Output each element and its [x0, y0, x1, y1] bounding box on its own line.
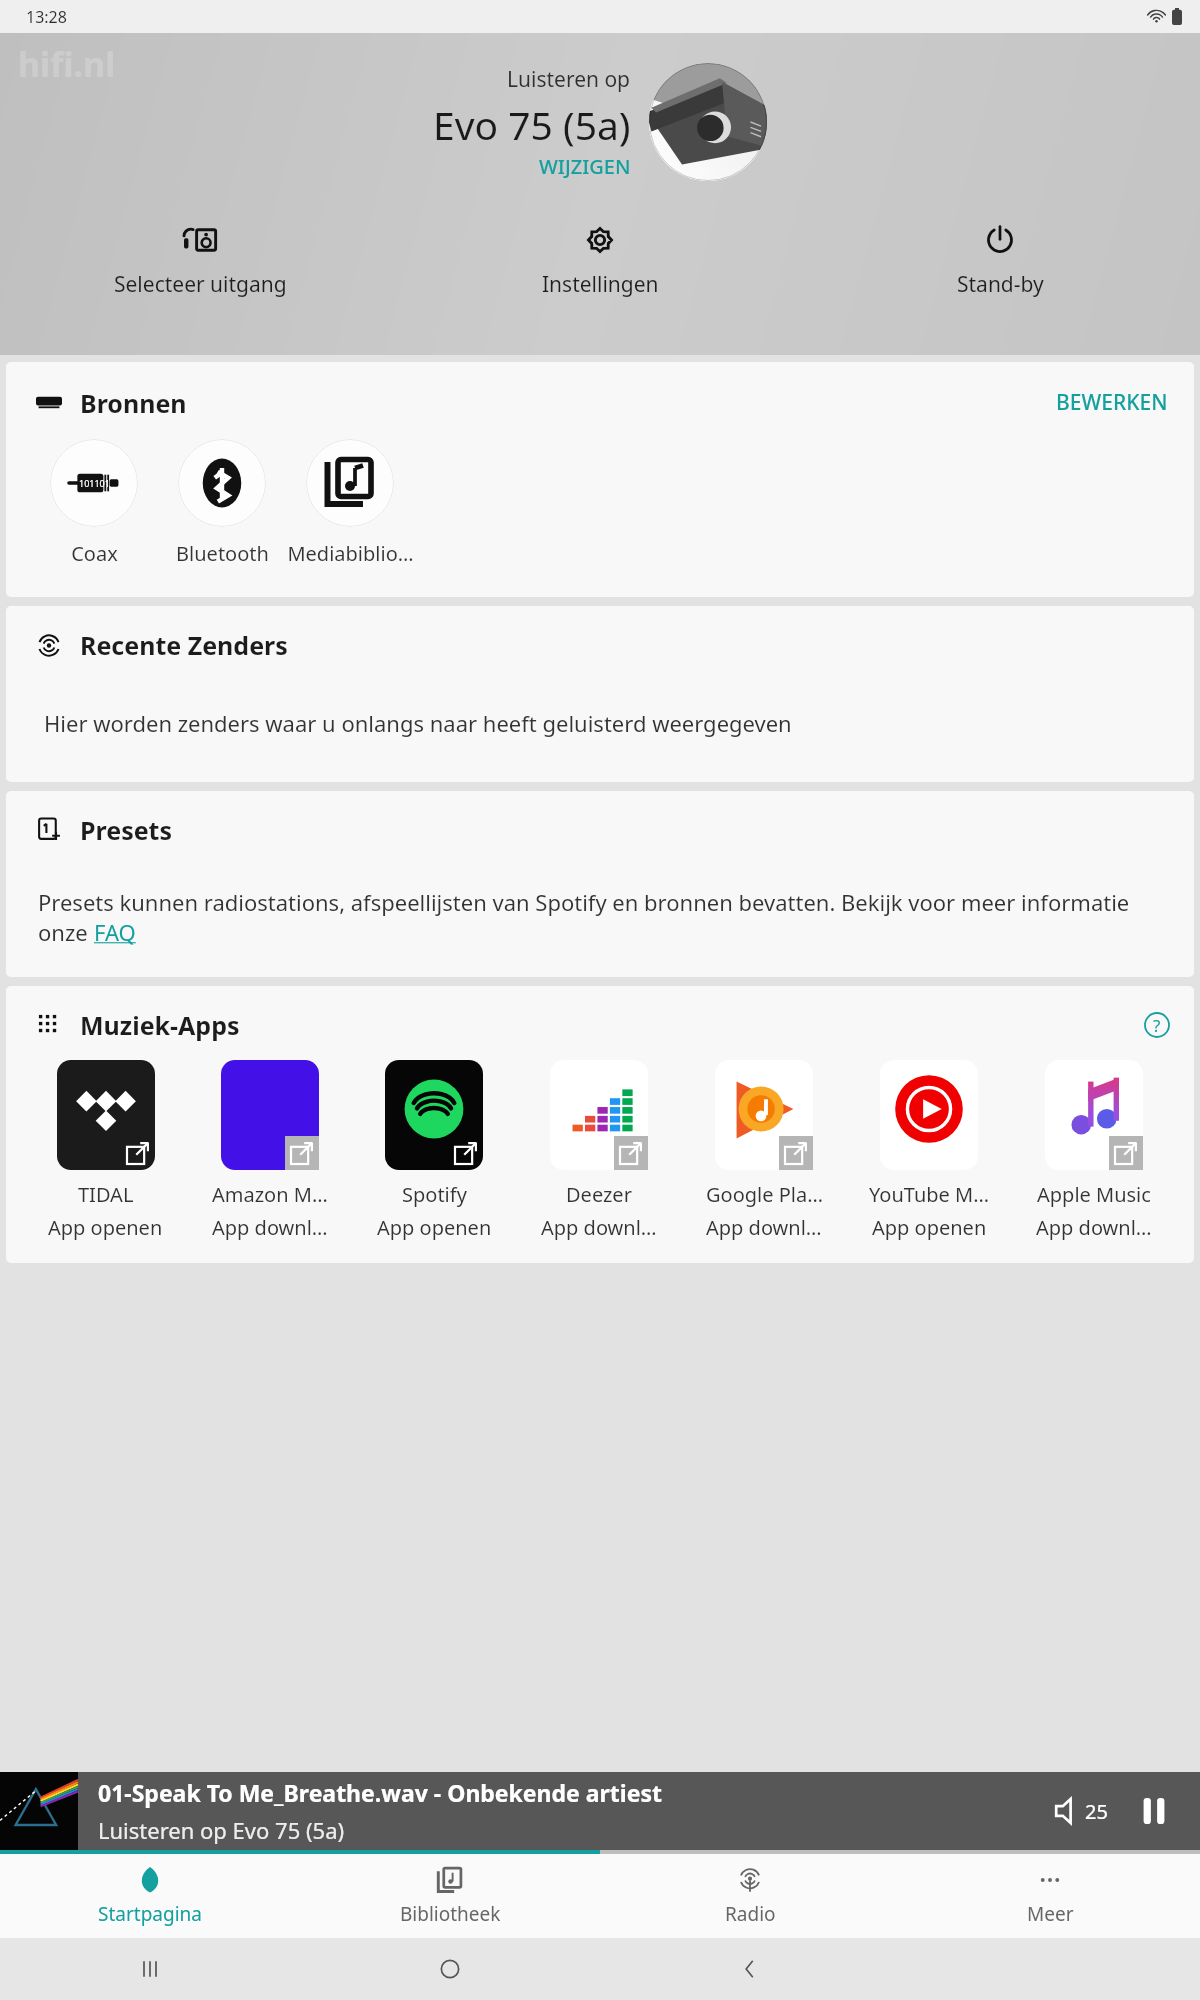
button[interactable]: YouTube M…	[849, 1060, 1009, 1241]
staticText: App openen	[872, 1214, 987, 1241]
staticText: Bluetooth	[176, 540, 269, 567]
staticText: Meer	[1027, 1901, 1074, 1927]
staticText: Muziek-Apps	[80, 1008, 240, 1042]
button[interactable]: Amazon M…	[190, 1060, 349, 1241]
staticText: App downl…	[1036, 1214, 1152, 1241]
staticText: Radio	[725, 1901, 776, 1927]
staticText: Selecteer uitgang	[114, 270, 287, 299]
button[interactable]: Stand-by	[800, 218, 1200, 303]
staticText: App downl…	[706, 1214, 822, 1241]
staticText: FAQ	[94, 917, 136, 947]
button[interactable]: Apple Music	[1014, 1060, 1174, 1241]
staticText: TIDAL	[78, 1181, 134, 1208]
staticText: 01-Speak To Me_Breathe.wav - Onbekende a…	[98, 1777, 662, 1808]
button[interactable]: Bibliotheek	[300, 1854, 600, 1938]
button[interactable]: BEWERKEN	[1052, 384, 1172, 421]
staticText: Bronnen	[80, 386, 187, 420]
staticText: Presets kunnen radiostations, afspeellij…	[38, 887, 1130, 917]
staticText: App openen	[377, 1214, 492, 1241]
staticText: Coax	[71, 540, 118, 567]
button[interactable]: FAQ	[94, 917, 136, 947]
staticText: Startpagina	[98, 1901, 202, 1927]
button[interactable]: TIDAL	[26, 1060, 185, 1241]
button[interactable]: Help	[1142, 1010, 1172, 1040]
button[interactable]: Bluetooth	[158, 439, 286, 567]
button[interactable]: Meer	[900, 1854, 1200, 1938]
staticText: Hier worden zenders waar u onlangs naar …	[44, 708, 792, 738]
staticText: 13:28	[26, 6, 67, 28]
button[interactable]: Evo 75 device	[649, 63, 767, 181]
staticText: Presets	[80, 813, 173, 847]
staticText: App downl…	[212, 1214, 328, 1241]
staticText: App openen	[48, 1214, 163, 1241]
staticText: Bibliotheek	[400, 1901, 501, 1927]
staticText: Luisteren op	[507, 65, 631, 94]
staticText: Evo 75 (5a)	[433, 98, 631, 151]
staticText: WIJZIGEN	[539, 153, 631, 180]
staticText: 101101	[79, 477, 110, 489]
button[interactable]: Mediabiblio…	[286, 439, 414, 567]
staticText: App downl…	[541, 1214, 657, 1241]
button[interactable]: Volume	[1047, 1788, 1116, 1834]
staticText: Deezer	[566, 1181, 632, 1208]
button[interactable]: Google Pla…	[684, 1060, 844, 1241]
button[interactable]: WIJZIGEN	[539, 153, 631, 180]
button[interactable]: Startpagina	[0, 1854, 300, 1938]
button[interactable]: 01-Speak To Me_Breathe.wav - Onbekende a…	[0, 1772, 1200, 1850]
staticText: onze	[38, 917, 94, 947]
staticText: ?	[1153, 1014, 1161, 1037]
button[interactable]: Pause	[1132, 1789, 1176, 1833]
button[interactable]: Spotify	[354, 1060, 514, 1241]
button[interactable]: Deezer	[519, 1060, 679, 1241]
staticText: Mediabiblio…	[287, 540, 414, 567]
button[interactable]: Selecteer uitgang	[0, 218, 400, 303]
staticText: YouTube M…	[869, 1181, 989, 1208]
button[interactable]: Instellingen	[400, 218, 800, 303]
staticText: Instellingen	[542, 270, 659, 299]
staticText: Apple Music	[1037, 1181, 1151, 1208]
staticText: Google Pla…	[706, 1181, 823, 1208]
staticText: Amazon M…	[212, 1181, 328, 1208]
staticText: BEWERKEN	[1056, 388, 1168, 417]
staticText: Stand-by	[957, 270, 1044, 299]
staticText: Recente Zenders	[80, 628, 288, 662]
button[interactable]: 101101	[30, 439, 158, 567]
staticText: Luisteren op Evo 75 (5a)	[98, 1815, 345, 1845]
staticText: 25	[1085, 1798, 1108, 1825]
staticText: Spotify	[402, 1181, 467, 1208]
button[interactable]: Radio	[600, 1854, 900, 1938]
staticText: hifi.nl	[18, 41, 116, 87]
